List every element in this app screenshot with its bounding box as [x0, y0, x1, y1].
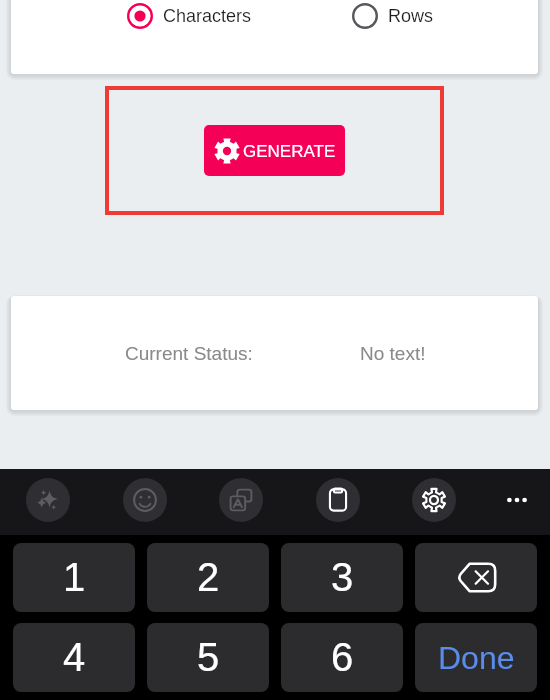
button[interactable]: Emoji — [123, 478, 167, 522]
staticText: Rows — [388, 6, 434, 26]
button[interactable]: Assist — [26, 478, 70, 522]
staticText: No text! — [360, 343, 426, 364]
button[interactable]: Clipboard — [316, 478, 360, 522]
staticText: Characters — [163, 6, 252, 26]
staticText: 2 — [197, 555, 220, 600]
staticText: GENERATE — [243, 142, 336, 161]
staticText: 5 — [197, 635, 220, 680]
button[interactable]: 4 — [13, 623, 135, 692]
staticText: Current Status: — [125, 343, 253, 364]
staticText: Done — [438, 640, 515, 676]
button[interactable]: Characters — [127, 3, 252, 29]
button[interactable]: 5 — [147, 623, 269, 692]
button[interactable]: GENERATE — [204, 125, 345, 176]
button[interactable]: 2 — [147, 543, 269, 612]
button[interactable]: 6 — [281, 623, 403, 692]
button[interactable]: Done — [415, 623, 537, 692]
button[interactable]: Translate — [219, 478, 263, 522]
button[interactable]: Rows — [352, 3, 434, 29]
button[interactable]: 3 — [281, 543, 403, 612]
staticText: 1 — [63, 555, 86, 600]
button[interactable]: 1 — [13, 543, 135, 612]
button[interactable]: Backspace — [415, 543, 537, 612]
button[interactable]: Settings — [412, 478, 456, 522]
staticText: 4 — [63, 635, 86, 680]
staticText: 3 — [331, 555, 354, 600]
staticText: 6 — [331, 635, 354, 680]
button[interactable]: More options — [495, 478, 539, 522]
